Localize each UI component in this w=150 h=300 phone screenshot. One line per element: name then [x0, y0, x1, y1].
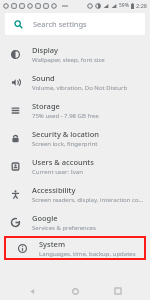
button[interactable]: Sound	[0, 68, 150, 96]
button[interactable]: Security & location	[0, 124, 150, 152]
staticText: 2:28	[136, 2, 147, 9]
staticText: 75% used - 7.98 GB free	[32, 112, 99, 120]
button[interactable]: Storage	[0, 96, 150, 124]
staticText: Volume, vibration, Do Not Disturb	[32, 84, 128, 92]
staticText: Storage	[32, 101, 60, 111]
button[interactable]: Accessibility	[0, 180, 150, 208]
staticText: Search settings	[33, 19, 87, 29]
staticText: Screen lock, fingerprint	[32, 140, 98, 148]
staticText: Wallpaper, sleep, font size	[32, 56, 105, 64]
staticText: Current user: Ivan	[32, 168, 83, 176]
button[interactable]: Google	[0, 208, 150, 236]
button[interactable]: Recent apps	[107, 282, 129, 300]
staticText: System	[39, 239, 66, 249]
staticText: Languages, time, backup, updates	[39, 250, 136, 258]
staticText: Display	[32, 45, 59, 55]
staticText: Services & preferences	[32, 224, 96, 232]
button[interactable]: Display	[0, 40, 150, 68]
staticText: Screen readers, display, interaction con…	[32, 196, 144, 204]
staticText: Security & location	[32, 129, 100, 139]
staticText: 59%	[119, 2, 129, 9]
button[interactable]: System	[6, 238, 144, 258]
staticText: Sound	[32, 73, 55, 83]
staticText: Users & accounts	[32, 157, 94, 167]
button[interactable]: Search settings	[5, 13, 145, 35]
button[interactable]: Back	[21, 282, 43, 300]
button[interactable]: Users & accounts	[0, 152, 150, 180]
staticText: Accessibility	[32, 185, 76, 195]
button[interactable]: Home	[64, 282, 86, 300]
staticText: Google	[32, 213, 58, 223]
